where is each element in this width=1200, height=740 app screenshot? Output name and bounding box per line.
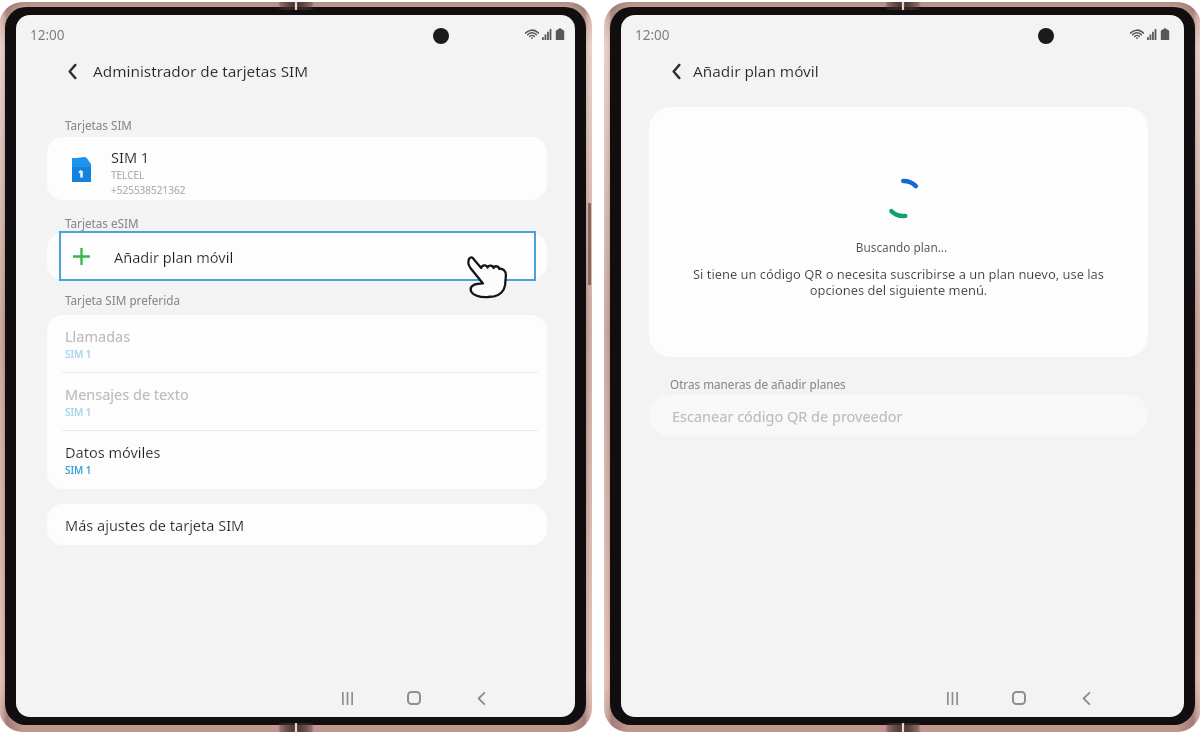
staticText: Más ajustes de tarjeta SIM [65,515,245,535]
button[interactable]: Recents [327,681,367,715]
staticText: TELCEL [111,168,145,182]
button[interactable]: Más ajustes de tarjeta SIM [47,504,547,545]
staticText: 12:00 [30,26,65,44]
staticText: Tarjetas SIM [65,117,132,133]
staticText: SIM 1 [65,405,92,419]
staticText: Buscando plan... [652,239,1151,255]
button[interactable]: Añadir plan móvil [47,233,547,280]
staticText: Añadir plan móvil [693,61,819,82]
button[interactable]: Home [999,681,1039,715]
button[interactable]: Back [1066,681,1106,715]
button[interactable]: Mensajes de texto [47,373,547,430]
button[interactable]: Llamadas [47,315,547,372]
staticText: Si tiene un código QR o necesita suscrib… [677,265,1120,299]
button[interactable]: Back [461,681,501,715]
button[interactable]: Home [394,681,434,715]
staticText: Otras maneras de añadir planes [670,376,846,392]
button[interactable]: Back [55,54,89,88]
staticText: Llamadas [65,326,131,346]
staticText: Añadir plan móvil [114,247,234,267]
staticText: Tarjetas eSIM [65,215,139,231]
button[interactable]: Escanear código QR de proveedor [649,395,1148,436]
staticText: Datos móviles [65,442,161,462]
staticText: Tarjeta SIM preferida [65,292,180,308]
staticText: +525538521362 [111,183,186,197]
button[interactable]: Datos móviles [47,431,547,488]
staticText: Administrador de tarjetas SIM [93,61,309,82]
button[interactable]: Recents [932,681,972,715]
button[interactable]: Back [659,54,693,88]
staticText: Mensajes de texto [65,384,189,404]
staticText: 12:00 [635,26,670,44]
staticText: SIM 1 [111,147,150,167]
staticText: SIM 1 [65,463,92,477]
button[interactable]: SIM 1 [47,137,547,200]
staticText: SIM 1 [65,347,92,361]
staticText: Escanear código QR de proveedor [672,406,903,426]
